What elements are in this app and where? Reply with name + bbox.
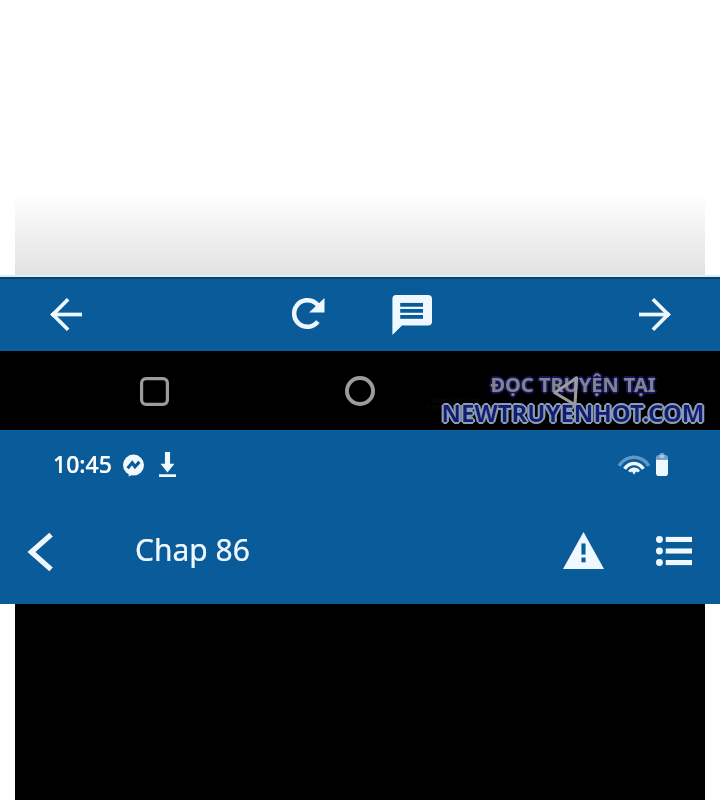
staticText: ĐỌC TRUYỆN TẠI xyxy=(491,372,657,399)
button[interactable]: Forward xyxy=(614,279,694,350)
staticText: ĐỌC TRUYỆN TẠI xyxy=(489,370,655,397)
staticText: NEWTRUYENHOT.COM xyxy=(414,395,720,428)
staticText: NEWTRUYENHOT.COM xyxy=(412,397,720,430)
staticText: NEWTRUYENHOT.COM xyxy=(411,396,720,429)
staticText: ĐỌC TRUYỆN TẠI xyxy=(489,372,655,399)
button[interactable]: Back xyxy=(531,361,601,421)
button[interactable]: Home xyxy=(325,361,395,421)
staticText: ĐỌC TRUYỆN TẠI xyxy=(492,371,658,398)
button[interactable]: Back xyxy=(26,279,106,350)
staticText: ĐỌC TRUYỆN TẠI xyxy=(490,373,656,400)
staticText: NEWTRUYENHOT.COM xyxy=(415,396,720,429)
staticText: 10:45 xyxy=(53,448,112,479)
button[interactable]: Reload xyxy=(269,279,349,350)
staticText: NEWTRUYENHOT.COM xyxy=(414,397,720,430)
staticText: NEWTRUYENHOT xyxy=(432,397,481,405)
staticText: NEWTRUYENHOT.COM xyxy=(413,396,720,429)
staticText: WWW.NEWTRUYENHOT.COM xyxy=(426,403,508,411)
staticText: NEWTRUYENHOT.COM xyxy=(412,395,720,428)
button[interactable]: Report xyxy=(547,514,619,586)
staticText: NEWTRUYENHOT.COM xyxy=(413,398,720,431)
button[interactable]: Recent apps xyxy=(119,361,189,421)
staticText: ĐỌC TRUYỆN TẠI xyxy=(490,369,656,396)
staticText: ĐỌC TRUYỆN TẠI xyxy=(490,371,656,398)
staticText: ĐỌC TRUYỆN TẠI xyxy=(491,370,657,397)
staticText: NEWTRUYENHOT.COM xyxy=(413,394,720,427)
button[interactable]: Chapter list xyxy=(638,515,710,587)
button[interactable]: Navigate up xyxy=(5,516,77,588)
staticText: Chap 86 xyxy=(135,529,250,570)
staticText: ĐỌC TRUYỆN TẠI xyxy=(488,371,654,398)
button[interactable]: Comments xyxy=(372,279,452,350)
